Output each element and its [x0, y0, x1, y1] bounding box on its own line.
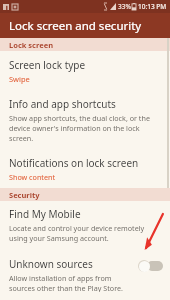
button[interactable]: Screen lock type	[0, 51, 170, 91]
staticText: 10:13 PM	[138, 2, 167, 11]
staticText: Lock screen and security	[9, 18, 142, 34]
staticText: Allow installation of apps from sources …	[9, 273, 134, 292]
staticText: 33%	[118, 2, 131, 11]
button[interactable]: Unknown sources	[0, 251, 170, 300]
staticText: Info and app shortcuts	[9, 97, 116, 111]
staticText: Notifications on lock screen	[9, 156, 139, 170]
staticText: Screen lock type	[9, 58, 86, 72]
staticText: Swipe	[9, 74, 30, 84]
staticText: Security	[9, 190, 40, 200]
staticText: Unknown sources	[9, 257, 93, 271]
staticText: Find My Mobile	[9, 207, 81, 221]
button[interactable]: Notifications on lock screen	[0, 150, 170, 188]
staticText: Locate and control your device remotely …	[9, 223, 158, 243]
staticText: Show app shortcuts, the dual clock, or t…	[9, 113, 158, 143]
staticText: Lock screen	[9, 40, 54, 50]
staticText: Show content	[9, 172, 56, 182]
button[interactable]: Find My Mobile	[0, 201, 170, 251]
button[interactable]: Info and app shortcuts	[0, 91, 170, 150]
button[interactable]: Unknown sources toggle, off	[138, 259, 164, 273]
